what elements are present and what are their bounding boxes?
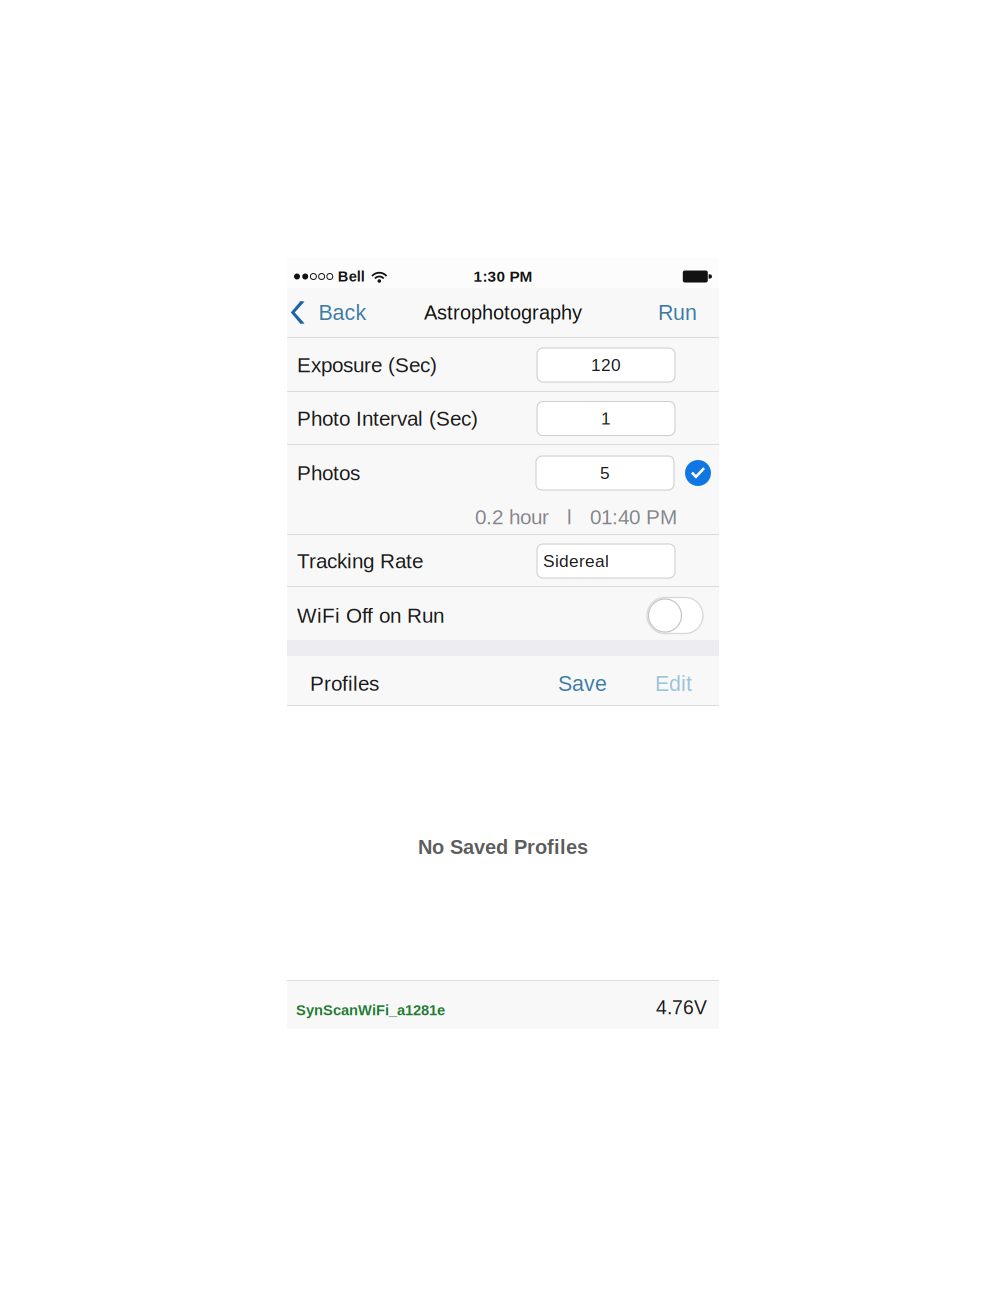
- button[interactable]: Photo Interval (Sec): [537, 401, 675, 435]
- staticText: Back: [318, 301, 366, 324]
- staticText: Run: [658, 301, 697, 324]
- staticText: Edit: [655, 672, 692, 695]
- button[interactable]: Back: [287, 288, 376, 337]
- button[interactable]: Confirm photo count: [674, 460, 719, 486]
- staticText: 1:30 PM: [473, 268, 532, 285]
- staticText: 5: [600, 463, 610, 483]
- button[interactable]: Exposure (Sec): [537, 348, 675, 382]
- staticText: 0.2 hour l 01:40 PM: [475, 505, 677, 529]
- staticText: 4.76V: [656, 997, 707, 1018]
- staticText: Astrophotography: [424, 301, 582, 324]
- staticText: Bell: [338, 268, 365, 285]
- staticText: Save: [558, 672, 607, 695]
- staticText: Photo Interval (Sec): [297, 407, 478, 430]
- staticText: SynScanWiFi_a1281e: [296, 1002, 445, 1018]
- staticText: WiFi Off on Run: [297, 604, 444, 627]
- staticText: No Saved Profiles: [418, 836, 588, 858]
- button[interactable]: Photos: [536, 456, 674, 490]
- staticText: Tracking Rate: [297, 549, 423, 573]
- button[interactable]: Edit: [627, 659, 708, 708]
- staticText: 120: [591, 355, 621, 375]
- button[interactable]: Save: [534, 659, 627, 708]
- button[interactable]: Tracking Rate: [537, 544, 675, 578]
- staticText: Sidereal: [543, 551, 609, 571]
- staticText: Exposure (Sec): [297, 353, 437, 377]
- staticText: Profiles: [310, 672, 379, 695]
- staticText: Photos: [297, 461, 360, 485]
- staticText: 1: [601, 409, 611, 428]
- button[interactable]: Run: [644, 288, 719, 337]
- button[interactable]: WiFi Off on Run: [647, 597, 703, 633]
